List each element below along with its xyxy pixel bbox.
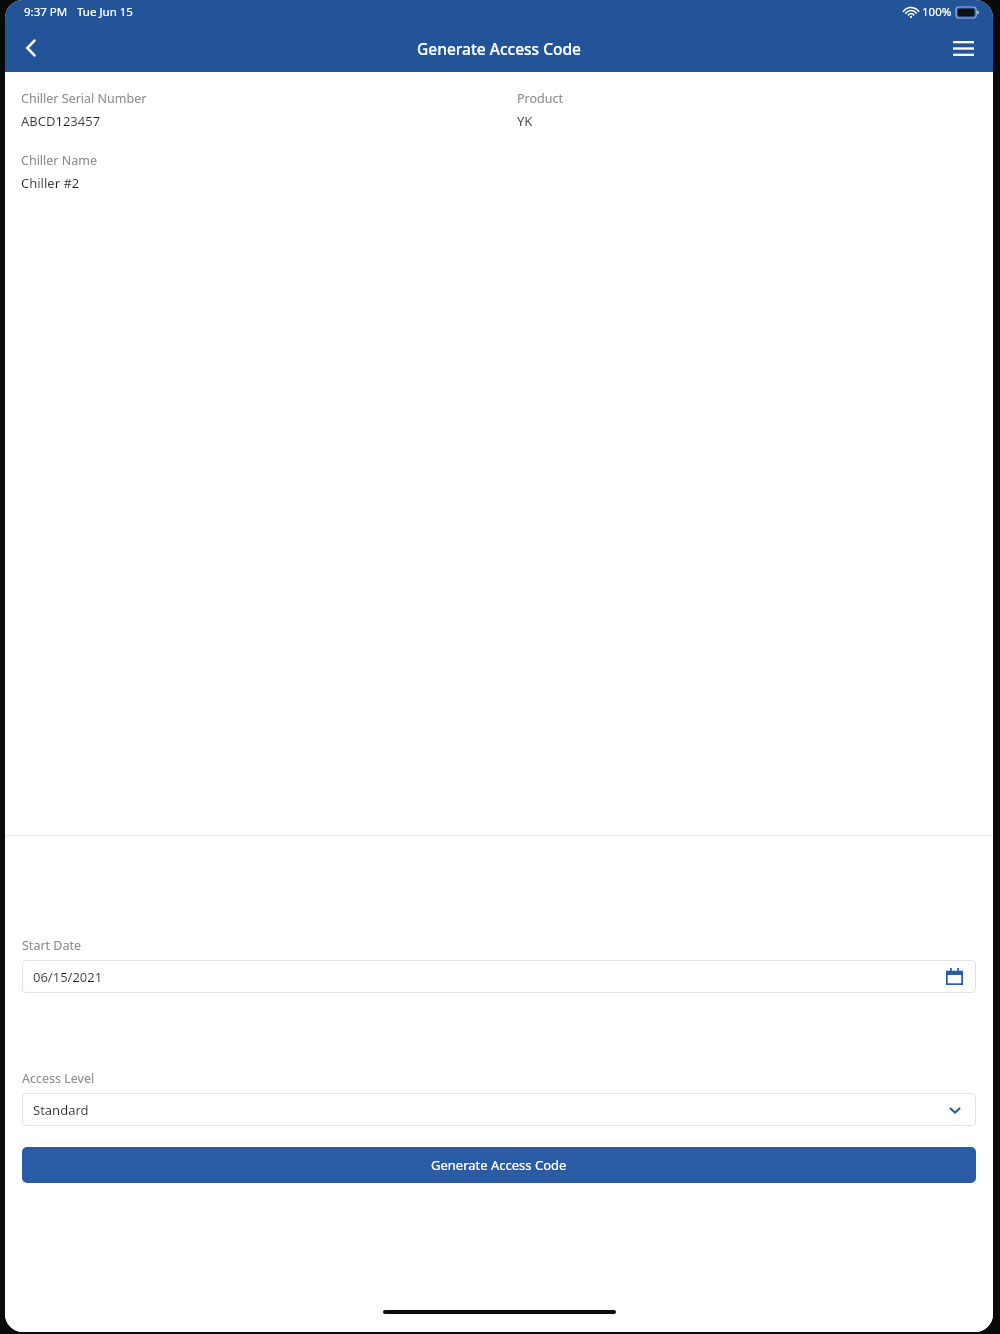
other: Expand <box>947 1102 963 1118</box>
staticText: 9:37 PM <box>24 4 68 20</box>
button[interactable]: Generate Access Code <box>22 1147 976 1183</box>
staticText: Chiller #2 <box>21 174 80 192</box>
staticText: Start Date <box>22 937 82 954</box>
staticText: Access Level <box>22 1070 95 1087</box>
staticText: YK <box>517 112 533 130</box>
staticText: Tue Jun 15 <box>77 4 133 20</box>
button[interactable]: 06/15/2021 <box>22 960 976 993</box>
staticText: Generate Access Code <box>431 1156 567 1174</box>
staticText: 06/15/2021 <box>33 968 103 986</box>
staticText: 100% <box>922 4 952 20</box>
staticText: ABCD123457 <box>21 112 101 130</box>
staticText: Product <box>517 90 563 107</box>
staticText: Generate Access Code <box>417 38 581 59</box>
button[interactable]: Standard <box>22 1093 976 1126</box>
staticText: Standard <box>33 1101 89 1119</box>
button[interactable]: Back <box>9 26 53 70</box>
staticText: Chiller Serial Number <box>21 90 147 107</box>
staticText: Chiller Name <box>21 152 98 169</box>
button[interactable]: Menu <box>941 26 985 70</box>
other: Pick date <box>946 968 963 985</box>
